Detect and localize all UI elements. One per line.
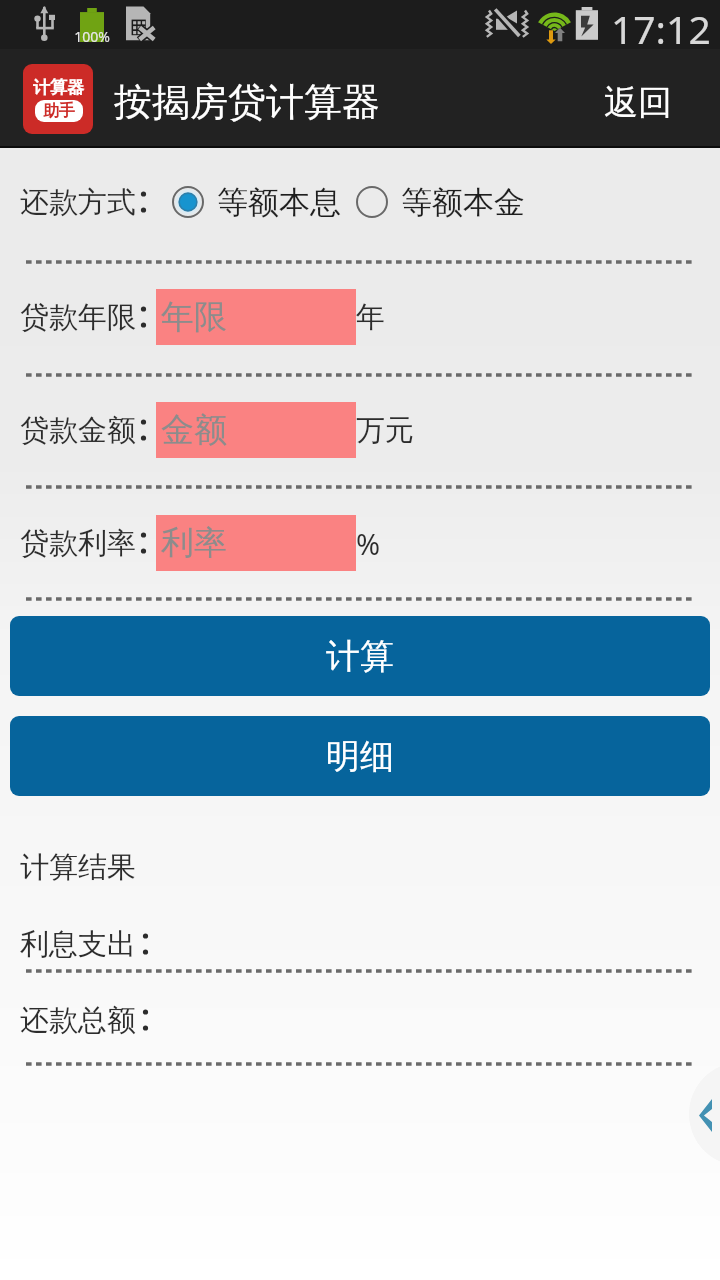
staticText: 年限 <box>161 296 227 338</box>
staticText: 计算 <box>326 635 394 678</box>
staticText: 利息支出 <box>20 926 136 963</box>
staticText: 计算结果 <box>20 849 136 886</box>
staticText: 还款总额 <box>20 1002 136 1039</box>
button[interactable]: 返回 <box>604 81 672 124</box>
staticText: 万元 <box>356 412 414 449</box>
staticText: % <box>356 524 381 563</box>
staticText: 按揭房贷计算器 <box>114 78 380 126</box>
button[interactable]: 金额 <box>156 402 356 458</box>
staticText: 返回 <box>604 81 672 124</box>
button[interactable]: 利率 <box>156 515 356 571</box>
staticText: 计算器 <box>33 77 84 98</box>
staticText: 助手 <box>43 101 75 121</box>
staticText: 100% <box>74 27 110 46</box>
staticText: 等额本金 <box>401 183 525 222</box>
staticText: 还款方式 <box>20 184 136 221</box>
staticText: 金额 <box>161 409 227 451</box>
staticText: 贷款利率 <box>20 525 136 562</box>
button[interactable]: 年限 <box>156 289 356 345</box>
staticText: 17:12 <box>611 2 711 51</box>
button[interactable]: 等额本金 <box>355 176 525 228</box>
staticText: 利率 <box>161 522 227 564</box>
button[interactable]: 明细 <box>10 716 710 796</box>
staticText: 等额本息 <box>217 183 341 222</box>
staticText: 年 <box>356 299 385 336</box>
staticText: 明细 <box>326 735 394 778</box>
staticText: 贷款金额 <box>20 412 136 449</box>
staticText: 贷款年限 <box>20 299 136 336</box>
button[interactable]: 计算 <box>10 616 710 696</box>
button[interactable]: 等额本息 <box>171 176 341 228</box>
button[interactable]: Back <box>689 1062 720 1166</box>
